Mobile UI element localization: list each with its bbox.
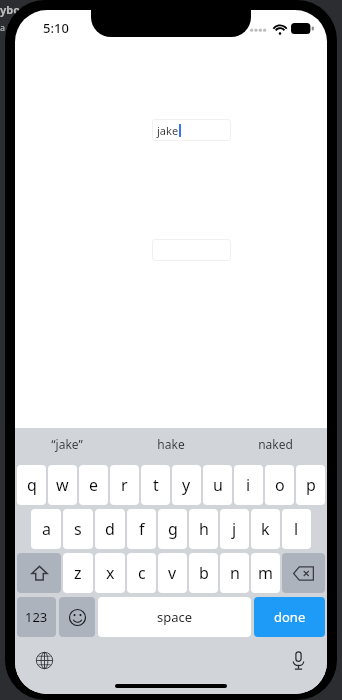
staticText: s — [74, 518, 82, 540]
button[interactable]: j — [220, 509, 249, 549]
button[interactable]: “jake” — [15, 428, 119, 460]
button[interactable]: p — [296, 465, 325, 505]
button[interactable]: y — [172, 465, 201, 505]
button[interactable]: o — [265, 465, 294, 505]
staticText: b — [199, 562, 209, 584]
staticText: l — [294, 518, 299, 540]
staticText: e — [89, 474, 99, 496]
button[interactable]: a — [31, 509, 61, 549]
staticText: z — [74, 562, 82, 584]
staticText: d — [105, 518, 115, 540]
button[interactable]: x — [95, 553, 125, 593]
button[interactable]: Emoji — [59, 597, 95, 637]
button[interactable]: jake — [152, 119, 231, 141]
button[interactable]: g — [158, 509, 187, 549]
button[interactable]: space — [98, 597, 251, 637]
staticText: k — [261, 518, 270, 540]
button[interactable]: u — [203, 465, 232, 505]
button[interactable] — [152, 239, 231, 261]
button[interactable]: Backspace — [282, 553, 325, 593]
staticText: 5:10 — [43, 19, 69, 37]
staticText: x — [106, 562, 115, 584]
button[interactable]: w — [48, 465, 77, 505]
staticText: h — [199, 518, 209, 540]
button[interactable]: Change keyboard — [29, 645, 59, 675]
button[interactable]: f — [127, 509, 156, 549]
staticText: yboa — [0, 2, 27, 17]
button[interactable]: i — [234, 465, 263, 505]
staticText: jake — [157, 123, 179, 138]
staticText: t — [153, 474, 159, 496]
staticText: v — [168, 562, 177, 584]
staticText: space — [157, 608, 193, 626]
staticText: a — [42, 518, 51, 540]
button[interactable]: e — [79, 465, 108, 505]
staticText: j — [232, 518, 237, 540]
staticText: 123 — [25, 608, 48, 626]
button[interactable]: s — [63, 509, 93, 549]
staticText: u — [213, 474, 223, 496]
button[interactable]: d — [95, 509, 125, 549]
button[interactable]: z — [63, 553, 93, 593]
button[interactable]: n — [220, 553, 249, 593]
button[interactable]: c — [127, 553, 156, 593]
staticText: n — [230, 562, 240, 584]
button[interactable]: Dictation — [283, 645, 313, 675]
staticText: w — [56, 474, 69, 496]
staticText: p — [306, 474, 316, 496]
button[interactable]: m — [251, 553, 280, 593]
staticText: a — [0, 21, 6, 33]
staticText: “jake” — [51, 436, 83, 452]
button[interactable]: l — [282, 509, 311, 549]
staticText: i — [246, 474, 251, 496]
button[interactable]: q — [17, 465, 46, 505]
staticText: done — [274, 608, 306, 626]
button[interactable]: Shift — [17, 553, 61, 593]
button[interactable]: k — [251, 509, 280, 549]
button[interactable]: t — [141, 465, 170, 505]
staticText: q — [27, 474, 37, 496]
staticText: f — [139, 518, 145, 540]
button[interactable]: r — [110, 465, 139, 505]
staticText: m — [258, 562, 273, 584]
staticText: r — [121, 474, 128, 496]
button[interactable]: done — [254, 597, 325, 637]
staticText: naked — [258, 436, 293, 452]
button[interactable]: h — [189, 509, 218, 549]
button[interactable]: naked — [223, 428, 327, 460]
staticText: c — [138, 562, 146, 584]
staticText: hake — [157, 436, 185, 452]
button[interactable]: 123 — [17, 597, 56, 637]
button[interactable]: v — [158, 553, 187, 593]
staticText: o — [275, 474, 285, 496]
button[interactable]: b — [189, 553, 218, 593]
staticText: y — [182, 474, 191, 496]
button[interactable]: hake — [119, 428, 223, 460]
staticText: g — [168, 518, 178, 540]
